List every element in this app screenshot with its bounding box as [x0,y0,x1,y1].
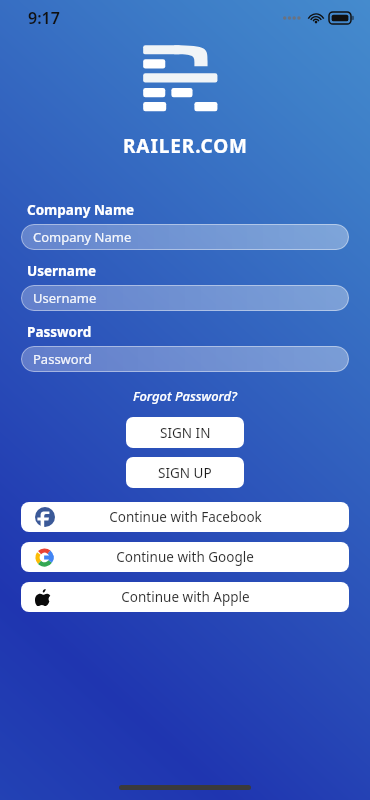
button[interactable]: Username [21,285,349,311]
button[interactable]: Continue with Apple [21,582,349,612]
staticText: SIGN UP [158,464,212,482]
staticText: Username [33,289,97,307]
staticText: Forgot Password? [133,387,237,405]
staticText: Username [27,262,97,280]
button[interactable]: Continue with Facebook [21,502,349,532]
button[interactable]: Forgot Password? [127,385,243,407]
other: Continue with Facebook [35,507,55,527]
other: Continue with Google [35,548,54,567]
button[interactable]: SIGN IN [126,417,244,448]
other: Continue with Apple [35,589,52,606]
staticText: Company Name [33,228,132,246]
staticText: Continue with Apple [121,588,250,606]
staticText: 9:17 [28,7,60,29]
staticText: Company Name [27,201,135,219]
staticText: Password [27,323,92,341]
button[interactable]: SIGN UP [126,457,244,488]
staticText: RAILER.COM [123,133,248,159]
staticText: SIGN IN [160,424,211,442]
button[interactable]: Password [21,346,349,372]
button[interactable]: Continue with Google [21,542,349,572]
staticText: Continue with Google [116,548,254,566]
staticText: Continue with Facebook [109,508,262,526]
button[interactable]: Company Name [21,224,349,250]
staticText: Password [33,350,92,368]
